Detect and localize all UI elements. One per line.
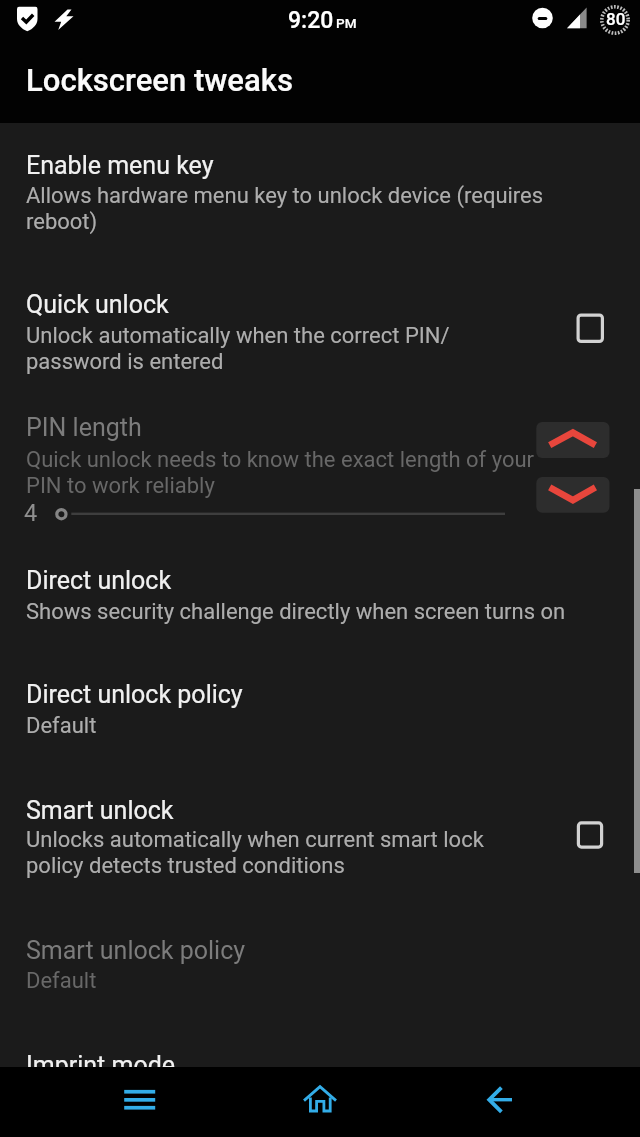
staticText: Unlock automatically when the correct PI… [26,323,450,375]
staticText: Default [26,713,97,739]
staticText: Direct unlock [26,566,172,595]
staticText: Smart unlock [26,796,174,825]
staticText: Imprint mode [26,1051,176,1080]
staticText: Quick unlock needs to know the exact len… [26,447,535,499]
staticText: Allows hardware menu key to unlock devic… [26,183,544,235]
staticText: Enable menu key [26,151,214,180]
staticText: Default [26,968,97,994]
staticText: Shows security challenge directly when s… [26,599,566,625]
staticText: 4 [24,499,38,527]
staticText: Direct unlock policy [26,680,243,709]
staticText: PIN length [26,413,142,442]
staticText: Unlocks automatically when current smart… [26,827,484,879]
staticText: Quick unlock [26,290,169,319]
staticText: Lockscreen tweaks [26,62,293,98]
staticText: 80 [606,9,626,29]
staticText: Smart unlock policy [26,936,246,965]
staticText: PM [336,15,357,31]
staticText: 9:20 [288,7,334,34]
